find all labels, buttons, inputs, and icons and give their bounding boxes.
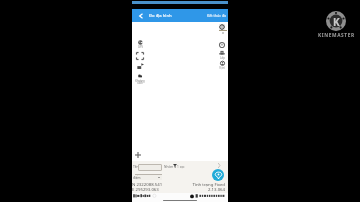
staticText: 2.13.064 xyxy=(178,186,225,192)
staticText: 1 cọc xyxy=(177,165,185,169)
button[interactable]: GPS xyxy=(135,40,145,49)
staticText: Vị trí xyxy=(219,66,225,70)
staticText: Nhóm xyxy=(164,165,174,169)
staticText: Lớp xyxy=(220,56,225,60)
staticText: điểm xyxy=(133,176,141,180)
staticText: E 295293.063 xyxy=(132,186,159,192)
staticText: N 2322088.541 xyxy=(132,181,163,187)
button[interactable]: Vị trí xyxy=(217,61,227,70)
button[interactable]: Kết thúc đo xyxy=(207,11,226,20)
staticText: Đo địa hình xyxy=(149,13,172,19)
staticText: Kết thúc đo xyxy=(207,13,226,18)
button[interactable]: Đo xyxy=(136,62,145,71)
staticText: K xyxy=(333,15,340,29)
staticText: Khoảng cách xyxy=(135,79,145,85)
button[interactable]: Khoảng cách xyxy=(135,73,145,85)
button[interactable]: Filter xyxy=(173,164,177,168)
staticText: GPS xyxy=(138,45,143,49)
button[interactable]: More xyxy=(217,163,221,168)
button[interactable]: Toàn màn hình xyxy=(135,51,144,60)
button[interactable]: Center map xyxy=(135,152,141,158)
button[interactable]: Lớp xyxy=(217,50,227,60)
button[interactable] xyxy=(138,164,162,171)
staticText: Tình trạng Fixed xyxy=(178,181,225,187)
staticText: Tên: xyxy=(133,164,140,169)
button[interactable]: La bàn xyxy=(217,40,226,49)
button[interactable]: Add point xyxy=(212,169,224,181)
button[interactable]: Back xyxy=(134,9,147,22)
staticText: KINEMASTER xyxy=(318,32,355,39)
button[interactable]: điểm xyxy=(135,174,162,180)
button[interactable]: Cài đặt xyxy=(217,22,226,31)
